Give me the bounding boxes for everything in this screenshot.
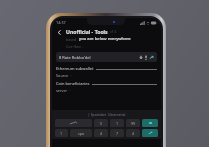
staticText: Coin beneficiaries [56,81,90,86]
button[interactable]: 1 [55,129,68,137]
staticText: 14:57 [56,20,66,25]
staticText: you are below everywhere [79,36,131,42]
button[interactable]: Enter [142,129,158,137]
staticText: 4 [132,131,135,136]
staticText: 7 [116,131,119,136]
staticText: ··· [69,89,72,93]
staticText: Coe Hwv - [66,44,84,49]
staticText: ··· [70,74,73,78]
staticText: 4 [100,131,103,136]
staticText: spa [78,131,84,136]
staticText: Ethereum subwallet [56,66,94,71]
button[interactable]: 7 [110,129,124,137]
staticText: Unofficial - Tools [66,28,108,35]
staticText: 99 [131,121,136,126]
button[interactable]: 4 [126,129,140,137]
button[interactable]: 4 [94,129,108,137]
button[interactable]: 99 [126,119,140,127]
button[interactable]: Key [55,119,92,127]
staticText: 5 [100,121,103,126]
button[interactable]: 1 [110,119,124,127]
staticText: 1 [60,131,63,136]
button[interactable]: Send [142,119,158,127]
button[interactable]: 8 Rate Robbo'del [56,52,157,62]
button[interactable]: Coin beneficiaries [56,81,157,93]
button[interactable]: Ethereum subwallet [56,66,157,78]
staticText: 8 Rate Robbo'del [59,55,139,60]
staticText: | Sportsbet Ukrametist [88,112,126,117]
staticText: based [66,37,77,42]
button[interactable]: Back [55,28,64,37]
button[interactable]: 5 [94,119,108,127]
button[interactable]: spa [70,129,92,137]
staticText: Source [56,73,69,78]
staticText: 1 [116,121,119,126]
staticText: v1.6 [110,29,117,34]
staticText: server [56,88,68,93]
